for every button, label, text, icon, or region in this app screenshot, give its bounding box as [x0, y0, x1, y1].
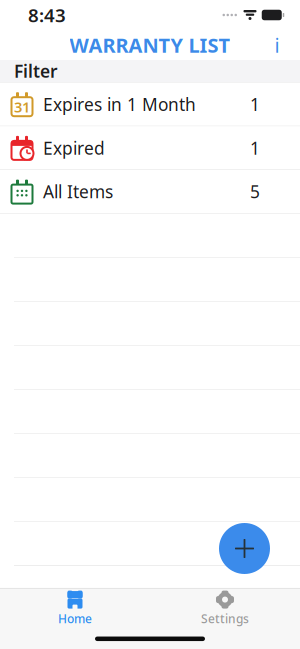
- staticText: Expired: [43, 136, 105, 159]
- button[interactable]: 31: [0, 83, 300, 126]
- staticText: 5: [250, 180, 260, 203]
- staticText: Expires in 1 Month: [43, 93, 196, 116]
- button[interactable]: Info: [260, 30, 294, 60]
- staticText: WARRANTY LIST: [69, 32, 230, 58]
- button[interactable]: All Items: [0, 170, 300, 214]
- staticText: Home: [58, 611, 92, 626]
- staticText: 8:43: [28, 3, 66, 27]
- staticText: 1: [250, 93, 260, 116]
- staticText: All Items: [43, 180, 113, 203]
- staticText: 31: [14, 97, 30, 116]
- staticText: 1: [250, 136, 260, 159]
- staticText: Settings: [201, 611, 249, 626]
- button[interactable]: Expired: [0, 126, 300, 170]
- button[interactable]: Settings: [150, 589, 300, 629]
- button[interactable]: Add item: [219, 523, 270, 574]
- button[interactable]: Home: [0, 589, 150, 629]
- staticText: i: [274, 32, 279, 58]
- staticText: Filter: [14, 59, 58, 82]
